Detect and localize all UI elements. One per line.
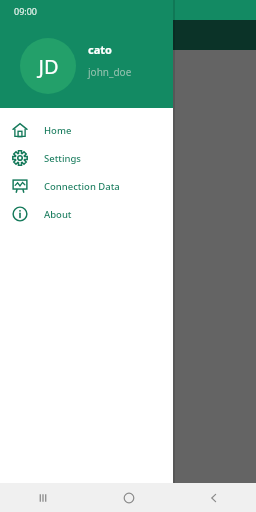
button[interactable]: About — [0, 200, 173, 228]
staticText: 09:00 — [14, 5, 38, 17]
staticText: Settings — [44, 152, 81, 165]
button[interactable]: JD — [20, 38, 76, 94]
staticText: Home — [44, 124, 72, 137]
staticText: Connection Data — [44, 180, 120, 193]
button[interactable]: Settings — [0, 144, 173, 172]
button[interactable]: Connection Data — [0, 172, 173, 200]
button[interactable]: Recent apps — [0, 483, 86, 512]
staticText: About — [44, 208, 72, 221]
staticText: john_doe — [88, 65, 132, 79]
button[interactable]: Home — [0, 116, 173, 144]
staticText: JD — [38, 53, 59, 80]
button[interactable]: Home — [86, 483, 171, 512]
button[interactable]: Back — [171, 483, 256, 512]
staticText: cato — [88, 42, 112, 57]
